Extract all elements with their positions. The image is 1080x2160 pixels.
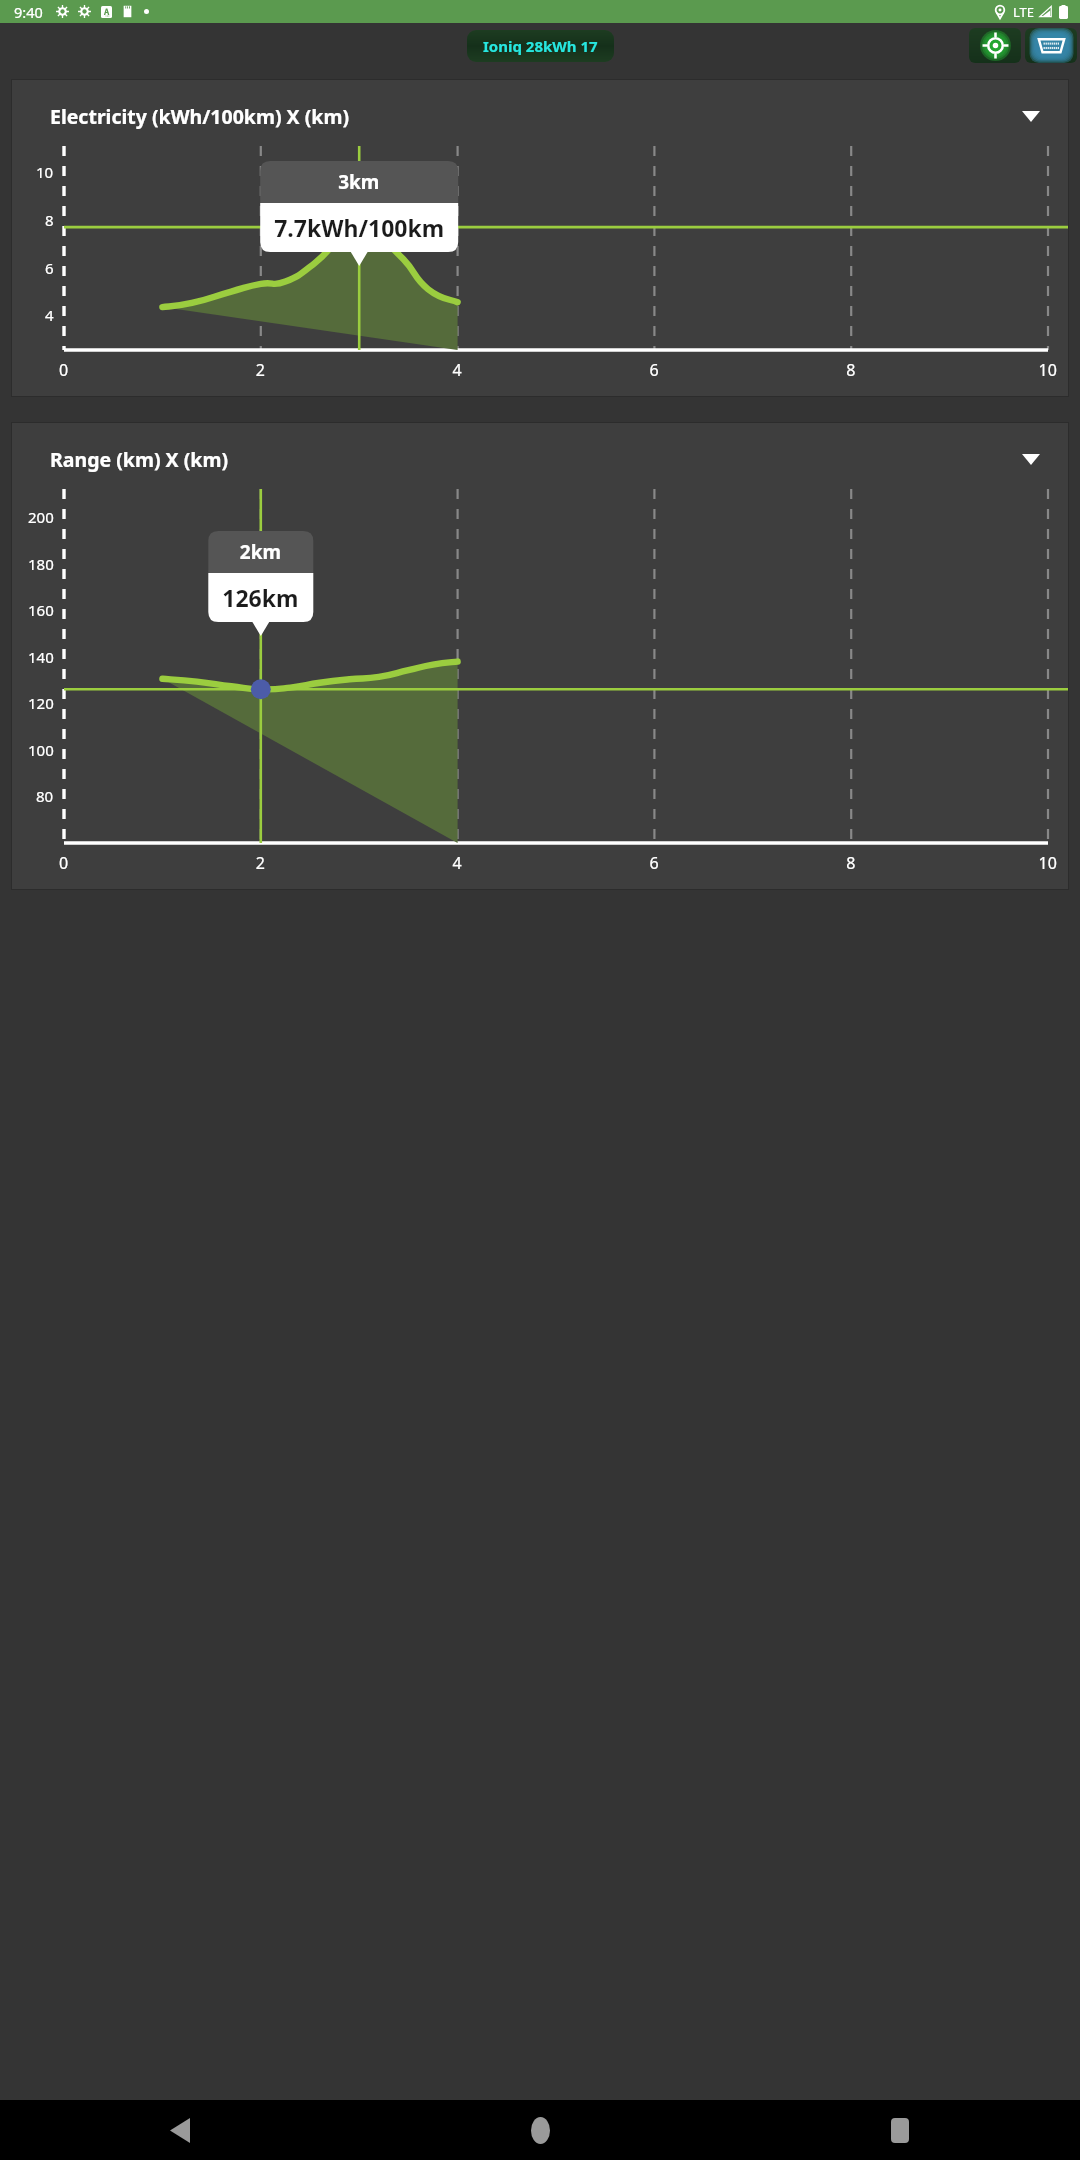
button[interactable]: GPS location <box>969 28 1021 63</box>
staticText: Electricity (kWh/100km) X (km) <box>50 103 350 130</box>
button[interactable]: Ioniq 28kWh 17 <box>467 30 614 62</box>
button[interactable]: Electricity (kWh/100km) X (km) <box>12 80 1068 396</box>
staticText: Ioniq 28kWh 17 <box>483 36 598 56</box>
staticText: Range (km) X (km) <box>50 446 229 473</box>
button[interactable]: Recent apps <box>720 2100 1080 2160</box>
button[interactable]: Range (km) X (km) <box>12 423 1068 889</box>
staticText: LTE <box>1013 3 1035 21</box>
button[interactable]: Chart options <box>1016 444 1046 474</box>
button[interactable]: OBD connection <box>1025 28 1077 63</box>
button[interactable]: Chart options <box>1016 101 1046 131</box>
button[interactable]: Back <box>0 2100 360 2160</box>
staticText: 9:40 <box>14 2 43 22</box>
button[interactable]: Home <box>360 2100 720 2160</box>
